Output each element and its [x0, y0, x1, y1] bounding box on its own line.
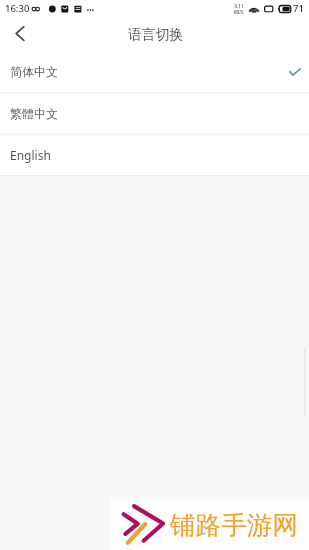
button[interactable]: 繁體中文: [0, 93, 309, 134]
button[interactable]: 简体中文: [0, 51, 309, 92]
staticText: KB/S: [233, 9, 244, 15]
staticText: 71: [293, 2, 304, 15]
staticText: English: [10, 147, 51, 163]
button[interactable]: English: [0, 135, 309, 175]
staticText: 16:30: [5, 2, 30, 15]
staticText: 简体中文: [10, 64, 58, 79]
staticText: 铺路手游网: [170, 509, 298, 541]
button[interactable]: Back: [0, 16, 40, 51]
staticText: 0.11: [234, 3, 244, 9]
staticText: 繁體中文: [10, 106, 58, 121]
staticText: 语言切换: [128, 26, 184, 43]
